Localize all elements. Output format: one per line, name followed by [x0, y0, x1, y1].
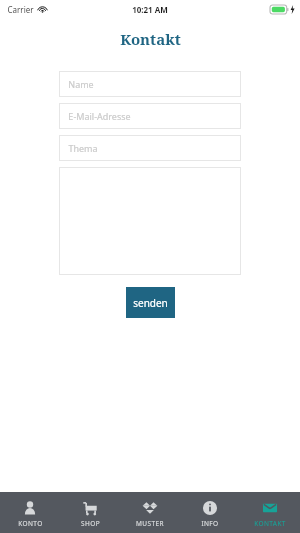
- button[interactable]: Name: [59, 71, 241, 97]
- button[interactable]: KONTO: [0, 492, 60, 533]
- button[interactable]: senden: [126, 287, 175, 318]
- staticText: MUSTER: [136, 519, 164, 528]
- staticText: Carrier: [7, 4, 34, 15]
- button[interactable]: [59, 167, 241, 275]
- staticText: Kontakt: [120, 29, 181, 49]
- button[interactable]: E-Mail-Adresse: [59, 103, 241, 129]
- staticText: Name: [68, 78, 94, 90]
- staticText: 10:21 AM: [132, 4, 168, 15]
- button[interactable]: Thema: [59, 135, 241, 161]
- button[interactable]: KONTAKT: [240, 492, 300, 533]
- staticText: SHOP: [81, 519, 100, 528]
- staticText: Thema: [68, 142, 98, 154]
- staticText: senden: [133, 296, 168, 310]
- button[interactable]: MUSTER: [120, 492, 180, 533]
- staticText: KONTAKT: [254, 519, 286, 528]
- staticText: INFO: [201, 519, 219, 528]
- button[interactable]: SHOP: [60, 492, 120, 533]
- staticText: KONTO: [18, 519, 43, 528]
- staticText: E-Mail-Adresse: [68, 110, 131, 122]
- button[interactable]: INFO: [180, 492, 240, 533]
